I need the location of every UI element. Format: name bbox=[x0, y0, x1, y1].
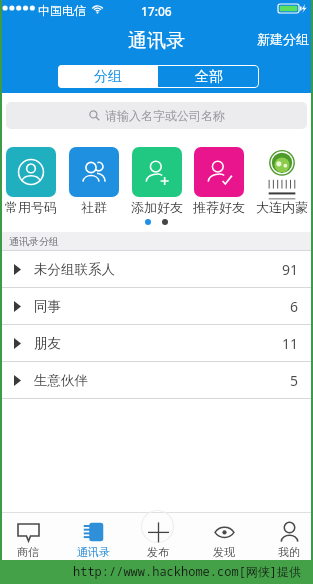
button[interactable]: 发布 bbox=[134, 512, 182, 560]
staticText: 通讯录分组 bbox=[9, 235, 59, 248]
staticText: 5 bbox=[290, 371, 299, 390]
button[interactable]: 推荐好友 bbox=[192, 147, 246, 215]
staticText: 常用号码 bbox=[5, 199, 57, 215]
button[interactable]: 我的 bbox=[265, 512, 313, 560]
staticText: 生意伙伴 bbox=[34, 372, 88, 389]
staticText: 发布 bbox=[147, 545, 169, 559]
button[interactable]: 发现 bbox=[200, 512, 248, 560]
staticText: 中国电信 bbox=[38, 3, 86, 18]
button[interactable]: 通讯录 bbox=[128, 29, 185, 53]
staticText: 大连内蒙 bbox=[256, 199, 308, 215]
staticText: 同事 bbox=[34, 298, 61, 315]
staticText: 社群 bbox=[81, 199, 107, 215]
staticText: 全部 bbox=[195, 68, 223, 86]
button[interactable]: 大连内蒙 bbox=[255, 147, 309, 215]
staticText: 通讯录 bbox=[77, 545, 110, 559]
button[interactable]: 商信 bbox=[4, 512, 52, 560]
staticText: 朋友 bbox=[34, 335, 61, 352]
staticText: 11 bbox=[282, 334, 299, 353]
staticText: 请输入名字或公司名称 bbox=[105, 108, 225, 123]
staticText: 新建分组 bbox=[257, 31, 309, 47]
staticText: 通讯录 bbox=[128, 29, 185, 53]
staticText: http://www.hackhome.com[网侠]提供 bbox=[73, 563, 302, 579]
button[interactable]: 常用号码 bbox=[4, 147, 58, 215]
staticText: 商信 bbox=[17, 545, 39, 559]
button[interactable]: 新建分组 bbox=[251, 28, 311, 50]
button[interactable]: 同事 bbox=[2, 288, 311, 325]
staticText: 未分组联系人 bbox=[34, 261, 115, 278]
button[interactable]: 朋友 bbox=[2, 325, 311, 362]
button[interactable]: 社群 bbox=[67, 147, 121, 215]
staticText: 17:06 bbox=[141, 3, 172, 19]
button[interactable]: 请输入名字或公司名称 bbox=[6, 102, 307, 129]
button[interactable]: 通讯录 bbox=[69, 512, 117, 560]
button[interactable]: 添加好友 bbox=[130, 147, 184, 215]
button[interactable]: 分组 bbox=[58, 65, 158, 88]
staticText: 6 bbox=[290, 297, 299, 316]
staticText: 发现 bbox=[213, 545, 235, 559]
staticText: 分组 bbox=[94, 68, 122, 86]
staticText: 推荐好友 bbox=[193, 199, 245, 215]
button[interactable]: 生意伙伴 bbox=[2, 362, 311, 399]
staticText: 添加好友 bbox=[131, 199, 183, 215]
staticText: 我的 bbox=[278, 545, 300, 559]
staticText: 91 bbox=[282, 260, 299, 279]
button[interactable]: 未分组联系人 bbox=[2, 251, 311, 288]
button[interactable]: 全部 bbox=[158, 65, 259, 88]
